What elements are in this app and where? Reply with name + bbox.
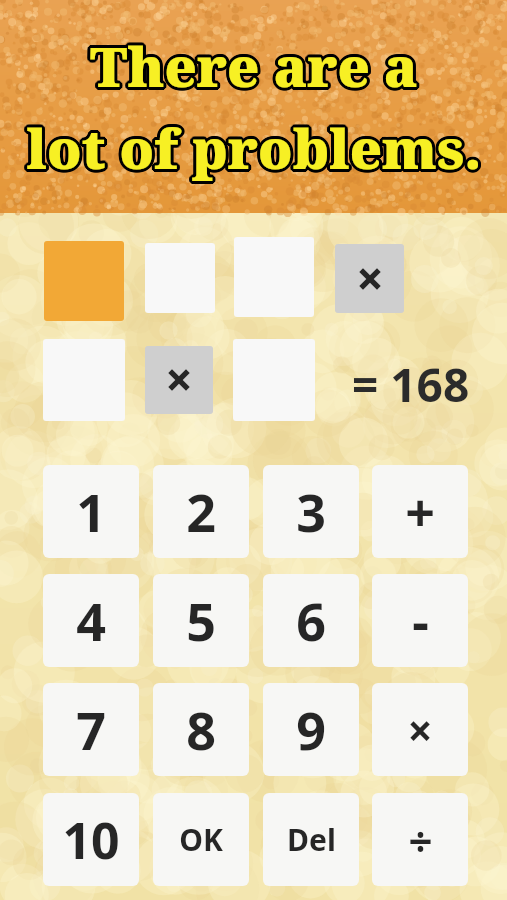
staticText: 10: [62, 806, 120, 874]
staticText: There are a: [88, 27, 416, 101]
staticText: lot of problems.: [24, 109, 480, 183]
button[interactable]: 5: [153, 574, 249, 667]
button[interactable]: 9: [263, 683, 359, 776]
staticText: ÷: [408, 811, 433, 868]
button[interactable]: 3: [263, 465, 359, 558]
staticText: There are a: [90, 32, 418, 106]
button[interactable]: -: [372, 574, 468, 667]
staticText: OK: [179, 819, 223, 860]
staticText: lot of problems.: [23, 110, 479, 184]
staticText: There are a: [93, 30, 421, 104]
staticText: There are a: [93, 28, 421, 102]
staticText: lot of problems.: [25, 114, 481, 188]
button[interactable]: 4: [43, 574, 139, 667]
staticText: lot of problems.: [29, 112, 485, 186]
button[interactable]: ×: [372, 683, 468, 776]
staticText: lot of problems.: [29, 110, 485, 184]
staticText: -: [412, 585, 429, 656]
staticText: ×: [407, 700, 433, 760]
staticText: There are a: [87, 29, 415, 103]
staticText: 8: [186, 694, 216, 765]
staticText: There are a: [91, 32, 419, 106]
button[interactable]: 10: [43, 793, 139, 886]
staticText: There are a: [90, 26, 418, 100]
staticText: There are a: [92, 31, 420, 105]
button[interactable]: 6: [263, 574, 359, 667]
staticText: 5: [186, 585, 216, 656]
staticText: There are a: [89, 32, 417, 106]
button[interactable]: 8: [153, 683, 249, 776]
button[interactable]: Multiply: [335, 244, 404, 313]
staticText: There are a: [89, 26, 417, 100]
staticText: Del: [287, 819, 336, 860]
staticText: lot of problems.: [23, 112, 479, 186]
staticText: +: [405, 476, 435, 547]
staticText: There are a: [87, 28, 415, 102]
button[interactable]: Del: [263, 793, 359, 886]
button[interactable]: Answer slot 1: [44, 241, 124, 321]
staticText: 7: [76, 694, 106, 765]
staticText: lot of problems.: [26, 114, 482, 188]
staticText: = 168: [352, 353, 470, 409]
staticText: There are a: [90, 29, 418, 103]
staticText: 6: [296, 585, 326, 656]
staticText: lot of problems.: [28, 109, 484, 183]
button[interactable]: ÷: [372, 793, 468, 886]
staticText: There are a: [88, 31, 416, 105]
button[interactable]: +: [372, 465, 468, 558]
staticText: lot of problems.: [25, 108, 481, 182]
staticText: There are a: [92, 27, 420, 101]
staticText: lot of problems.: [26, 108, 482, 182]
staticText: lot of problems.: [26, 111, 482, 185]
staticText: lot of problems.: [23, 111, 479, 185]
staticText: 2: [186, 476, 216, 547]
button[interactable]: Multiply: [145, 346, 213, 414]
staticText: 4: [76, 585, 106, 656]
staticText: There are a: [93, 29, 421, 103]
staticText: lot of problems.: [27, 114, 483, 188]
button[interactable]: 7: [43, 683, 139, 776]
button[interactable]: 2: [153, 465, 249, 558]
staticText: 9: [296, 694, 326, 765]
staticText: There are a: [87, 30, 415, 104]
button[interactable]: 1: [43, 465, 139, 558]
button[interactable]: OK: [153, 793, 249, 886]
staticText: 1: [76, 476, 106, 547]
staticText: lot of problems.: [24, 113, 480, 187]
staticText: lot of problems.: [29, 111, 485, 185]
staticText: lot of problems.: [28, 113, 484, 187]
staticText: lot of problems.: [27, 108, 483, 182]
staticText: 3: [296, 476, 326, 547]
staticText: There are a: [91, 26, 419, 100]
